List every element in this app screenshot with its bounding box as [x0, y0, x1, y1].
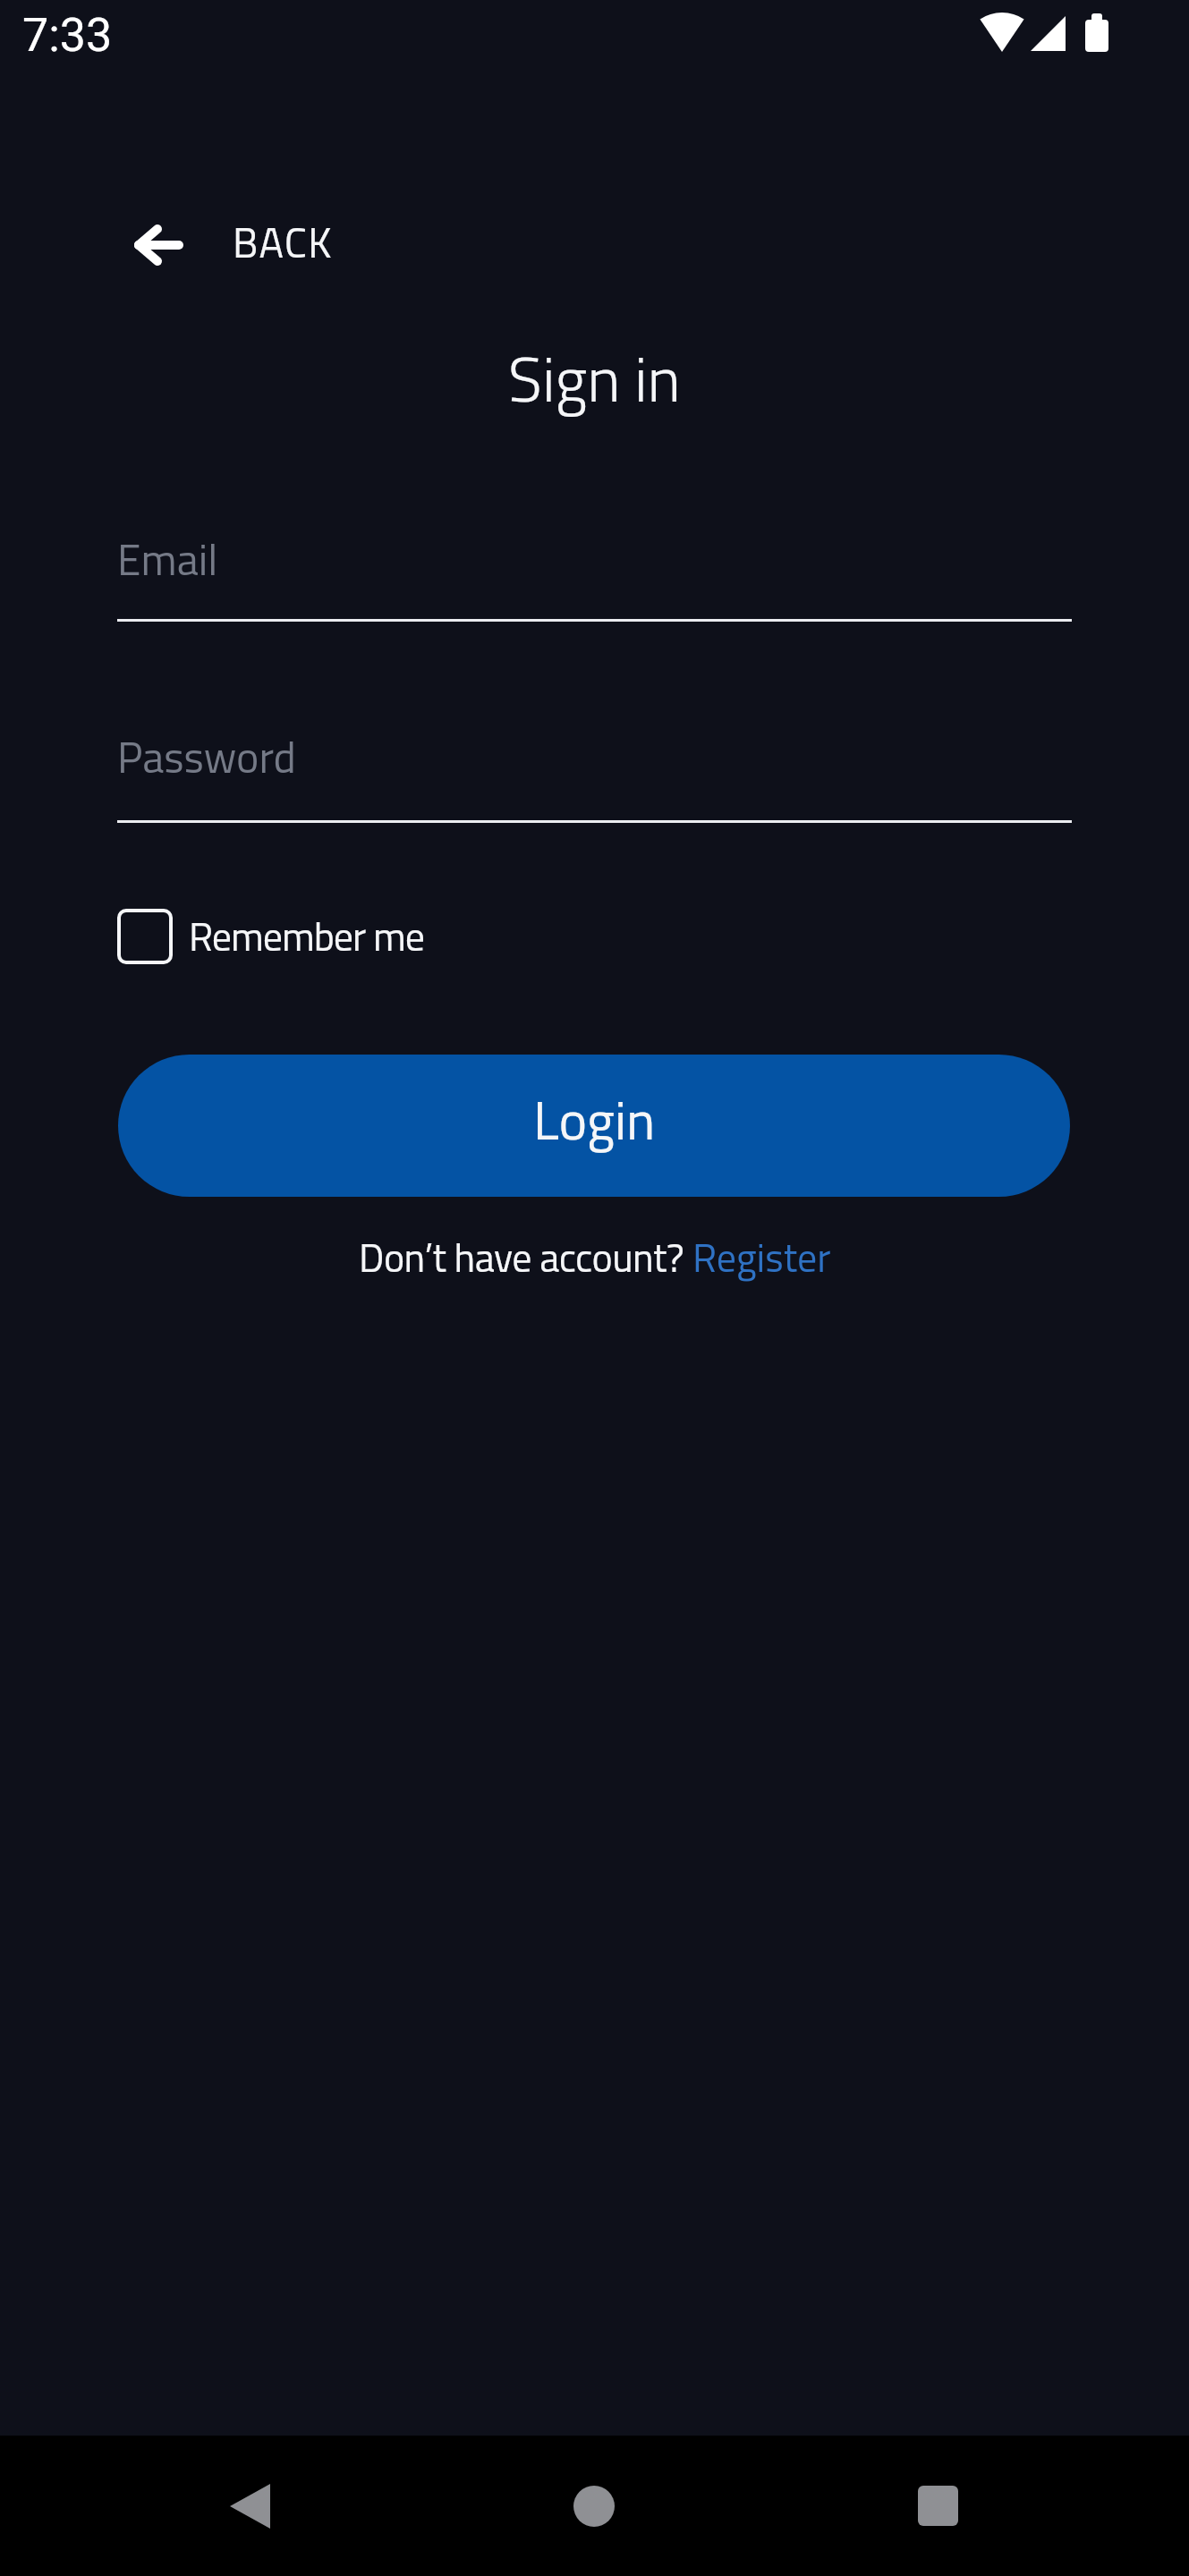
staticText: Don’t have account? — [359, 1227, 692, 1287]
staticText: Email — [117, 527, 218, 592]
button[interactable] — [884, 2436, 991, 2576]
staticText: Sign in — [0, 331, 1189, 426]
button[interactable]: Remember me — [117, 906, 424, 966]
staticText: Remember me — [189, 906, 424, 966]
button[interactable] — [196, 2436, 303, 2576]
button[interactable]: Login — [118, 1055, 1070, 1197]
staticText: BACK — [233, 211, 333, 274]
staticText: Password — [117, 724, 296, 790]
button[interactable]: Password — [117, 706, 1072, 823]
button[interactable]: BACK — [135, 211, 333, 274]
staticText: Login — [533, 1079, 656, 1160]
button[interactable]: Register — [692, 1227, 831, 1287]
button[interactable]: Email — [117, 506, 1072, 622]
staticText: 7:33 — [22, 8, 113, 63]
button[interactable] — [540, 2436, 648, 2576]
